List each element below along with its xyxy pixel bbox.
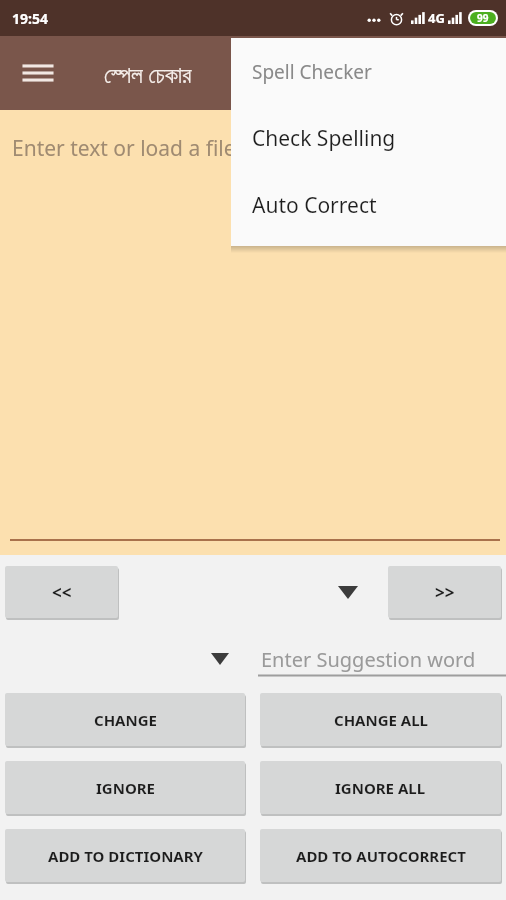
button[interactable]: << (5, 566, 118, 618)
staticText: << (52, 581, 72, 604)
staticText: CHANGE ALL (334, 710, 428, 730)
button[interactable]: CHANGE (5, 693, 245, 746)
button[interactable]: Check Spelling (231, 105, 506, 172)
staticText: >> (435, 581, 455, 604)
staticText: Enter text or load a file (12, 134, 236, 163)
button[interactable]: ADD TO AUTOCORRECT (260, 829, 501, 882)
staticText: Auto Correct (252, 191, 377, 220)
staticText: ADD TO DICTIONARY (48, 846, 203, 866)
staticText: IGNORE (96, 778, 155, 798)
button[interactable]: >> (388, 566, 501, 618)
button[interactable]: Choose suggestion (200, 639, 240, 679)
staticText: স্পেল চেকার (104, 58, 192, 89)
button[interactable]: Spell Checker (231, 38, 506, 105)
button[interactable]: ADD TO DICTIONARY (5, 829, 245, 882)
staticText: Spell Checker (252, 59, 372, 85)
button[interactable]: Enter Suggestion word (258, 636, 506, 682)
button[interactable]: Open navigation drawer (14, 49, 62, 97)
button[interactable]: Select misspelled word (328, 572, 368, 612)
button[interactable]: IGNORE ALL (260, 761, 501, 814)
button[interactable]: IGNORE (5, 761, 245, 814)
staticText: 4G (428, 9, 445, 27)
staticText: ADD TO AUTOCORRECT (296, 846, 466, 866)
staticText: CHANGE (94, 710, 157, 730)
button[interactable]: Auto Correct (231, 172, 506, 239)
button[interactable]: CHANGE ALL (260, 693, 501, 746)
staticText: Check Spelling (252, 124, 396, 153)
staticText: Enter Suggestion word (261, 646, 476, 673)
staticText: 99 (477, 11, 489, 25)
staticText: IGNORE ALL (335, 778, 426, 798)
staticText: 19:54 (12, 9, 48, 28)
